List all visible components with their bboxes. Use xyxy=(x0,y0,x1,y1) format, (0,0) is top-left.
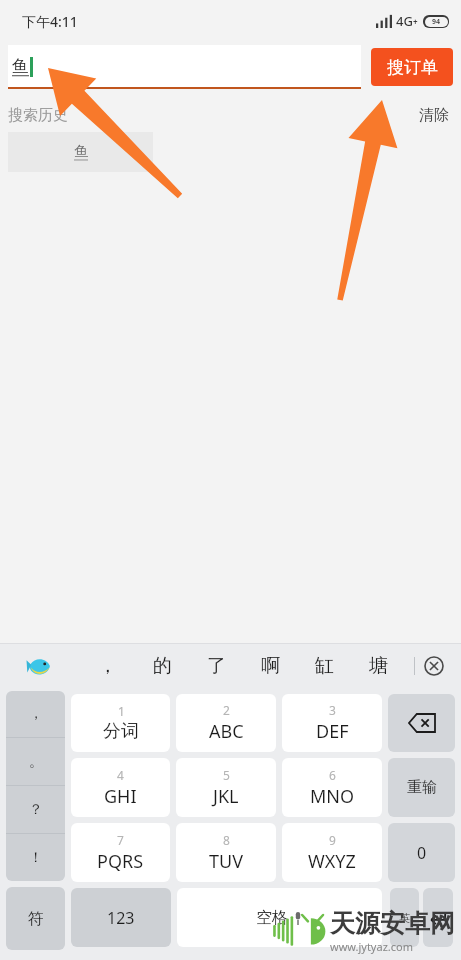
button[interactable]: ！ xyxy=(6,834,65,881)
staticText: 分词 xyxy=(103,720,139,743)
staticText: ？ xyxy=(29,801,43,819)
staticText: 4G xyxy=(396,12,413,30)
staticText: 8 xyxy=(223,832,230,848)
button[interactable]: 。 xyxy=(6,738,65,785)
staticText: 94 xyxy=(432,17,441,27)
staticText: ， xyxy=(29,705,43,723)
button[interactable]: 了 xyxy=(189,644,243,688)
staticText: 1 xyxy=(118,703,125,719)
button[interactable]: 鱼 xyxy=(8,132,153,172)
staticText: 搜订单 xyxy=(387,57,438,78)
staticText: 缸 xyxy=(315,654,334,678)
staticText: 7 xyxy=(117,832,124,848)
staticText: JKL xyxy=(213,784,239,809)
button[interactable]: 搜订单 xyxy=(371,48,453,86)
button[interactable]: 123 xyxy=(71,888,171,947)
button[interactable]: 1 xyxy=(71,694,170,752)
staticText: www.jytyaz.com xyxy=(330,939,413,954)
button[interactable]: 清除 xyxy=(419,106,449,125)
staticText: GHI xyxy=(104,784,137,809)
staticText: 了 xyxy=(207,654,226,678)
button[interactable]: 4 xyxy=(71,758,170,817)
staticText: 的 xyxy=(153,654,172,678)
staticText: 下午4:11 xyxy=(22,12,78,31)
button[interactable]: 塘 xyxy=(351,644,405,688)
button[interactable]: 2 xyxy=(176,694,276,752)
button[interactable]: 7 xyxy=(71,823,170,882)
staticText: PQRS xyxy=(97,849,144,874)
staticText: 3 xyxy=(329,702,336,718)
button[interactable]: 的 xyxy=(135,644,189,688)
staticText: 123 xyxy=(107,907,135,929)
button[interactable]: 5 xyxy=(176,758,276,817)
button[interactable]: 英 xyxy=(390,888,419,947)
staticText: 搜索历史 xyxy=(8,106,68,125)
button[interactable]: 0 xyxy=(388,823,455,882)
staticText: 塘 xyxy=(369,654,388,678)
staticText: 2 xyxy=(223,702,230,718)
staticText: 4 xyxy=(117,767,124,783)
staticText: ， xyxy=(98,654,117,678)
staticText: ！ xyxy=(29,849,43,867)
button[interactable]: 9 xyxy=(282,823,382,882)
staticText: 。 xyxy=(29,753,43,771)
staticText: WXYZ xyxy=(308,849,356,874)
button[interactable]: ， xyxy=(80,644,135,688)
staticText: 6 xyxy=(329,767,336,783)
staticText: 9 xyxy=(329,832,336,848)
button[interactable]: 8 xyxy=(176,823,276,882)
button[interactable]: 缸 xyxy=(297,644,351,688)
staticText: 啊 xyxy=(261,654,280,678)
staticText: 鱼 xyxy=(12,56,29,77)
staticText: 天源安卓网 xyxy=(330,908,455,939)
button[interactable]: 鱼 xyxy=(8,45,361,89)
button[interactable]: ？ xyxy=(6,786,65,833)
button[interactable]: Backspace xyxy=(388,694,455,752)
staticText: MNO xyxy=(310,784,355,809)
button[interactable]: ， xyxy=(6,691,65,737)
staticText: TUV xyxy=(209,849,243,874)
staticText: 重输 xyxy=(407,778,437,797)
staticText: 英 xyxy=(399,911,410,925)
staticText: 符 xyxy=(28,909,44,929)
button[interactable]: Enter xyxy=(423,888,453,947)
staticText: 空格 xyxy=(256,908,288,928)
staticText: 鱼 xyxy=(74,143,88,161)
staticText: 5 xyxy=(223,767,230,783)
button[interactable]: Input method logo xyxy=(26,653,52,679)
button[interactable]: 6 xyxy=(282,758,382,817)
staticText: DEF xyxy=(316,719,349,744)
button[interactable]: Close candidates xyxy=(419,651,449,681)
staticText: + xyxy=(413,16,418,27)
staticText: 0 xyxy=(417,842,427,864)
button[interactable]: 空格 xyxy=(177,888,382,947)
button[interactable]: 啊 xyxy=(243,644,297,688)
staticText: ABC xyxy=(209,719,244,744)
button[interactable]: 符 xyxy=(6,887,65,950)
button[interactable]: 重输 xyxy=(388,758,455,817)
button[interactable]: 3 xyxy=(282,694,382,752)
